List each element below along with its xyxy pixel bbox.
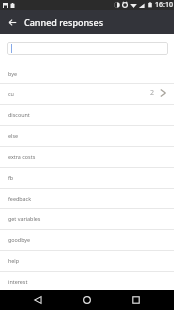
button[interactable]: Back — [28, 290, 48, 310]
button[interactable]: Home — [77, 290, 97, 310]
staticText: discount — [8, 111, 30, 118]
staticText: Canned responses — [24, 16, 104, 28]
button[interactable]: interest — [0, 272, 174, 293]
button[interactable]: Back — [0, 10, 24, 34]
button[interactable]: cu — [0, 84, 174, 105]
button[interactable]: help — [0, 251, 174, 272]
button[interactable]: discount — [0, 105, 174, 126]
staticText: else — [8, 132, 19, 139]
staticText: help — [8, 257, 20, 264]
button[interactable]: Recent apps — [126, 290, 146, 310]
button[interactable]: extra costs — [0, 147, 174, 168]
button[interactable]: bye — [0, 64, 174, 85]
staticText: bye — [8, 70, 17, 77]
staticText: interest — [8, 278, 28, 285]
staticText: 16:10 — [155, 0, 173, 10]
staticText: feedback — [8, 195, 32, 202]
staticText: 2 — [150, 88, 155, 98]
staticText: extra costs — [8, 153, 36, 160]
button[interactable]: get variables — [0, 209, 174, 230]
staticText: cu — [8, 90, 14, 97]
staticText: goodbye — [8, 236, 31, 243]
button[interactable]: feedback — [0, 189, 174, 210]
button[interactable] — [7, 42, 168, 55]
button[interactable]: goodbye — [0, 230, 174, 251]
staticText: fb — [8, 174, 14, 181]
button[interactable]: else — [0, 126, 174, 147]
staticText: get variables — [8, 215, 41, 222]
button[interactable]: fb — [0, 168, 174, 189]
